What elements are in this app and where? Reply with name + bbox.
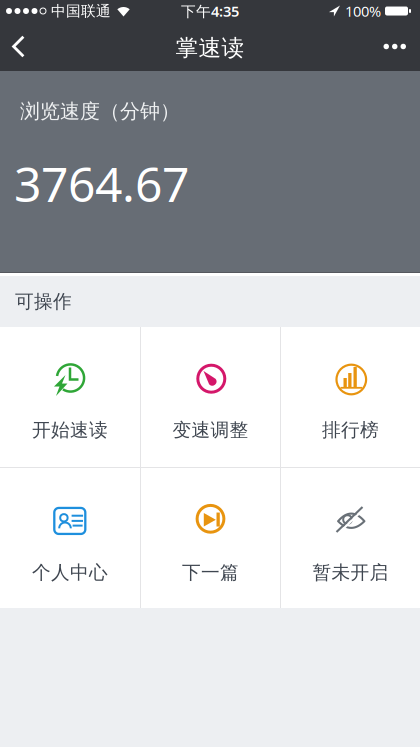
staticText: 下午4:35 bbox=[181, 1, 239, 21]
staticText: 下一篇 bbox=[182, 561, 239, 584]
staticText: 暂未开启 bbox=[312, 561, 388, 584]
button[interactable]: Back bbox=[0, 22, 34, 70]
button[interactable]: 开始速读 bbox=[0, 327, 140, 467]
button[interactable]: 变速调整 bbox=[141, 327, 280, 467]
button[interactable]: 排行榜 bbox=[281, 327, 420, 467]
staticText: 个人中心 bbox=[32, 561, 108, 584]
button[interactable]: 个人中心 bbox=[0, 468, 140, 608]
staticText: 变速调整 bbox=[172, 419, 248, 441]
staticText: 中国联通 bbox=[51, 2, 111, 20]
button[interactable]: 暂未开启 bbox=[281, 468, 420, 608]
button[interactable]: 下一篇 bbox=[141, 468, 280, 608]
staticText: 排行榜 bbox=[322, 419, 379, 441]
staticText: 浏览速度（分钟） bbox=[20, 99, 180, 124]
button[interactable]: More bbox=[373, 26, 420, 67]
staticText: 开始速读 bbox=[32, 419, 108, 441]
staticText: 100% bbox=[345, 1, 381, 21]
staticText: 3764.67 bbox=[14, 152, 189, 215]
staticText: 可操作 bbox=[15, 290, 72, 313]
staticText: 掌速读 bbox=[175, 34, 244, 62]
